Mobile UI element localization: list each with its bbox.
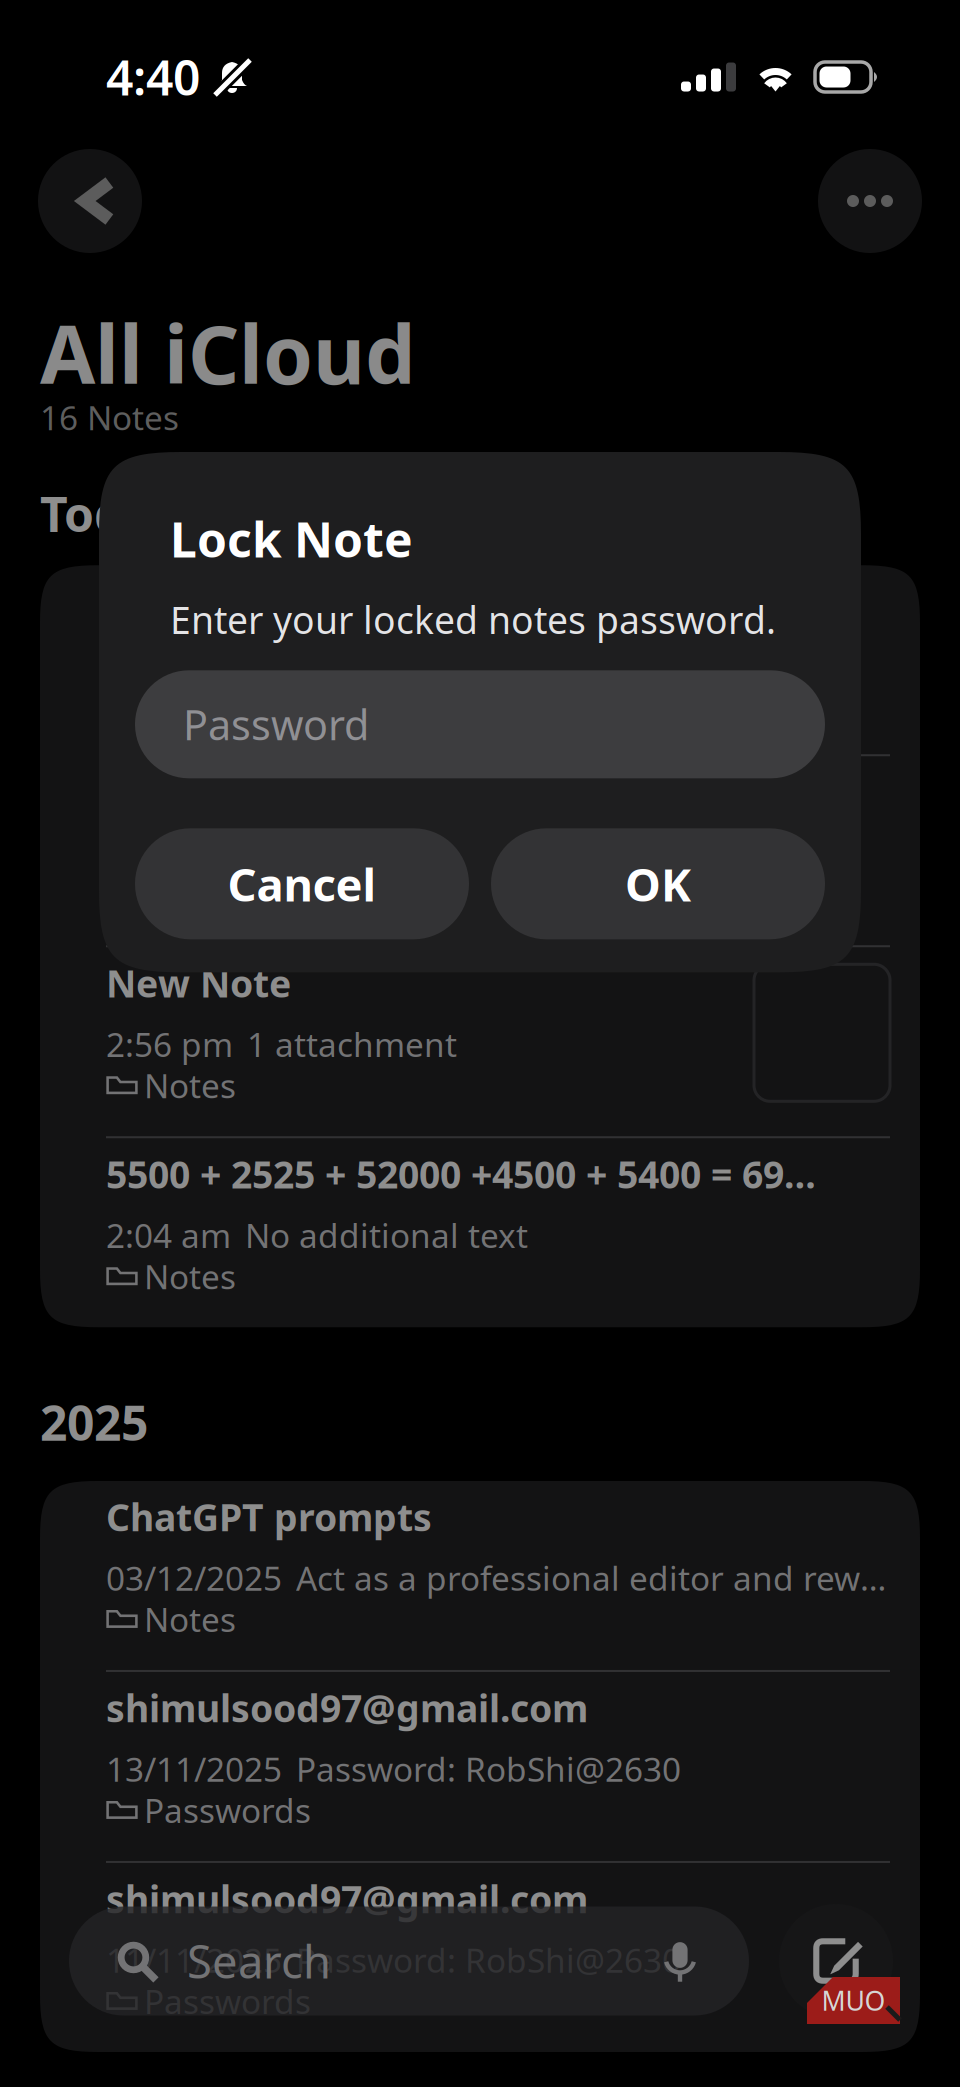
staticText: 5500 + 2525 + 52000 +4500 + 5400 = 69… (106, 1149, 816, 1199)
staticText: 2025 (40, 1390, 148, 1454)
button[interactable]: OK (491, 828, 825, 939)
button[interactable]: ChatGPT prompts (40, 1481, 920, 1670)
staticText: MUO (821, 1983, 885, 2018)
staticText: 1 attachment (247, 1022, 457, 1066)
staticText: Cancel (227, 854, 376, 914)
staticText: Notes (144, 681, 236, 725)
button[interactable]: Back (38, 149, 142, 253)
staticText: OK (625, 854, 691, 914)
button[interactable]: shimulsood97@gmail.com (40, 1863, 920, 2052)
staticText: Notes (144, 872, 236, 916)
staticText: No additional text (245, 1213, 528, 1257)
staticText: Enter your locked notes password. (170, 595, 776, 644)
button[interactable]: Grocery list (40, 756, 920, 945)
staticText: 4:40 (106, 45, 200, 109)
staticText: Search (187, 1931, 331, 1991)
staticText: No additional text (247, 831, 530, 875)
button[interactable]: Lock Note (40, 565, 920, 754)
staticText: All iCloud (40, 300, 416, 406)
staticText: 2:04 am (106, 1213, 231, 1257)
staticText: Lock Note (170, 507, 413, 571)
staticText: 2:56 pm (106, 1022, 233, 1066)
staticText: No additional text (247, 640, 530, 684)
button[interactable]: New Note (40, 947, 920, 1136)
staticText: Passwords (144, 1979, 311, 2023)
button[interactable]: Search (69, 1906, 749, 2015)
staticText: 16 Notes (40, 395, 179, 439)
staticText: 3:05 pm (106, 831, 233, 875)
button[interactable]: Cancel (135, 828, 469, 939)
staticText: shimulsood97@gmail.com (106, 1683, 588, 1733)
staticText: Today (40, 481, 180, 545)
staticText: Act as a professional editor and rewri… (296, 1556, 890, 1600)
staticText: 11/11/2025 (106, 1938, 282, 1982)
staticText: Grocery list (106, 767, 318, 817)
staticText: shimulsood97@gmail.com (106, 1874, 588, 1924)
staticText: Notes (144, 1254, 236, 1298)
staticText: Lock Note (106, 576, 293, 626)
staticText: 03/12/2025 (106, 1556, 282, 1600)
staticText: Password: RobShi@2630 (296, 1747, 681, 1791)
button[interactable]: New Note (779, 1904, 893, 2018)
staticText: New Note (106, 958, 291, 1008)
staticText: 13/11/2025 (106, 1747, 282, 1791)
staticText: Passwords (144, 1788, 311, 1832)
staticText: ChatGPT prompts (106, 1492, 432, 1542)
button[interactable]: shimulsood97@gmail.com (40, 1672, 920, 1861)
staticText: Notes (144, 1597, 236, 1641)
staticText: 3:22 pm (106, 640, 233, 684)
staticText: Notes (144, 1063, 236, 1107)
staticText: Password: RobShi@2630 (296, 1938, 681, 1982)
staticText: Password (183, 697, 369, 752)
button[interactable]: More (818, 149, 922, 253)
button[interactable]: 5500 + 2525 + 52000 +4500 + 5400 = 69… (40, 1138, 920, 1327)
